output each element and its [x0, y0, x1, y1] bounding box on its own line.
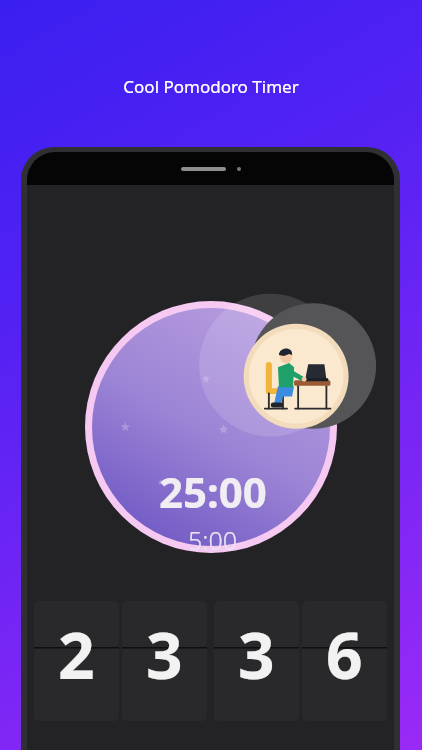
- staticText: 3: [146, 611, 183, 698]
- staticText: 25:00: [159, 463, 267, 520]
- staticText: Cool Pomodoro Timer: [123, 75, 299, 98]
- staticText: 6: [326, 611, 363, 698]
- staticText: 5:00: [188, 523, 237, 557]
- button[interactable]: [85, 301, 337, 553]
- button[interactable]: 6: [302, 601, 387, 721]
- staticText: 2: [58, 611, 95, 698]
- button[interactable]: 3: [122, 601, 207, 721]
- staticText: 3: [238, 611, 275, 698]
- button[interactable]: 2: [34, 601, 119, 721]
- button[interactable]: 3: [214, 601, 299, 721]
- button[interactable]: Focus session: [243, 302, 371, 430]
